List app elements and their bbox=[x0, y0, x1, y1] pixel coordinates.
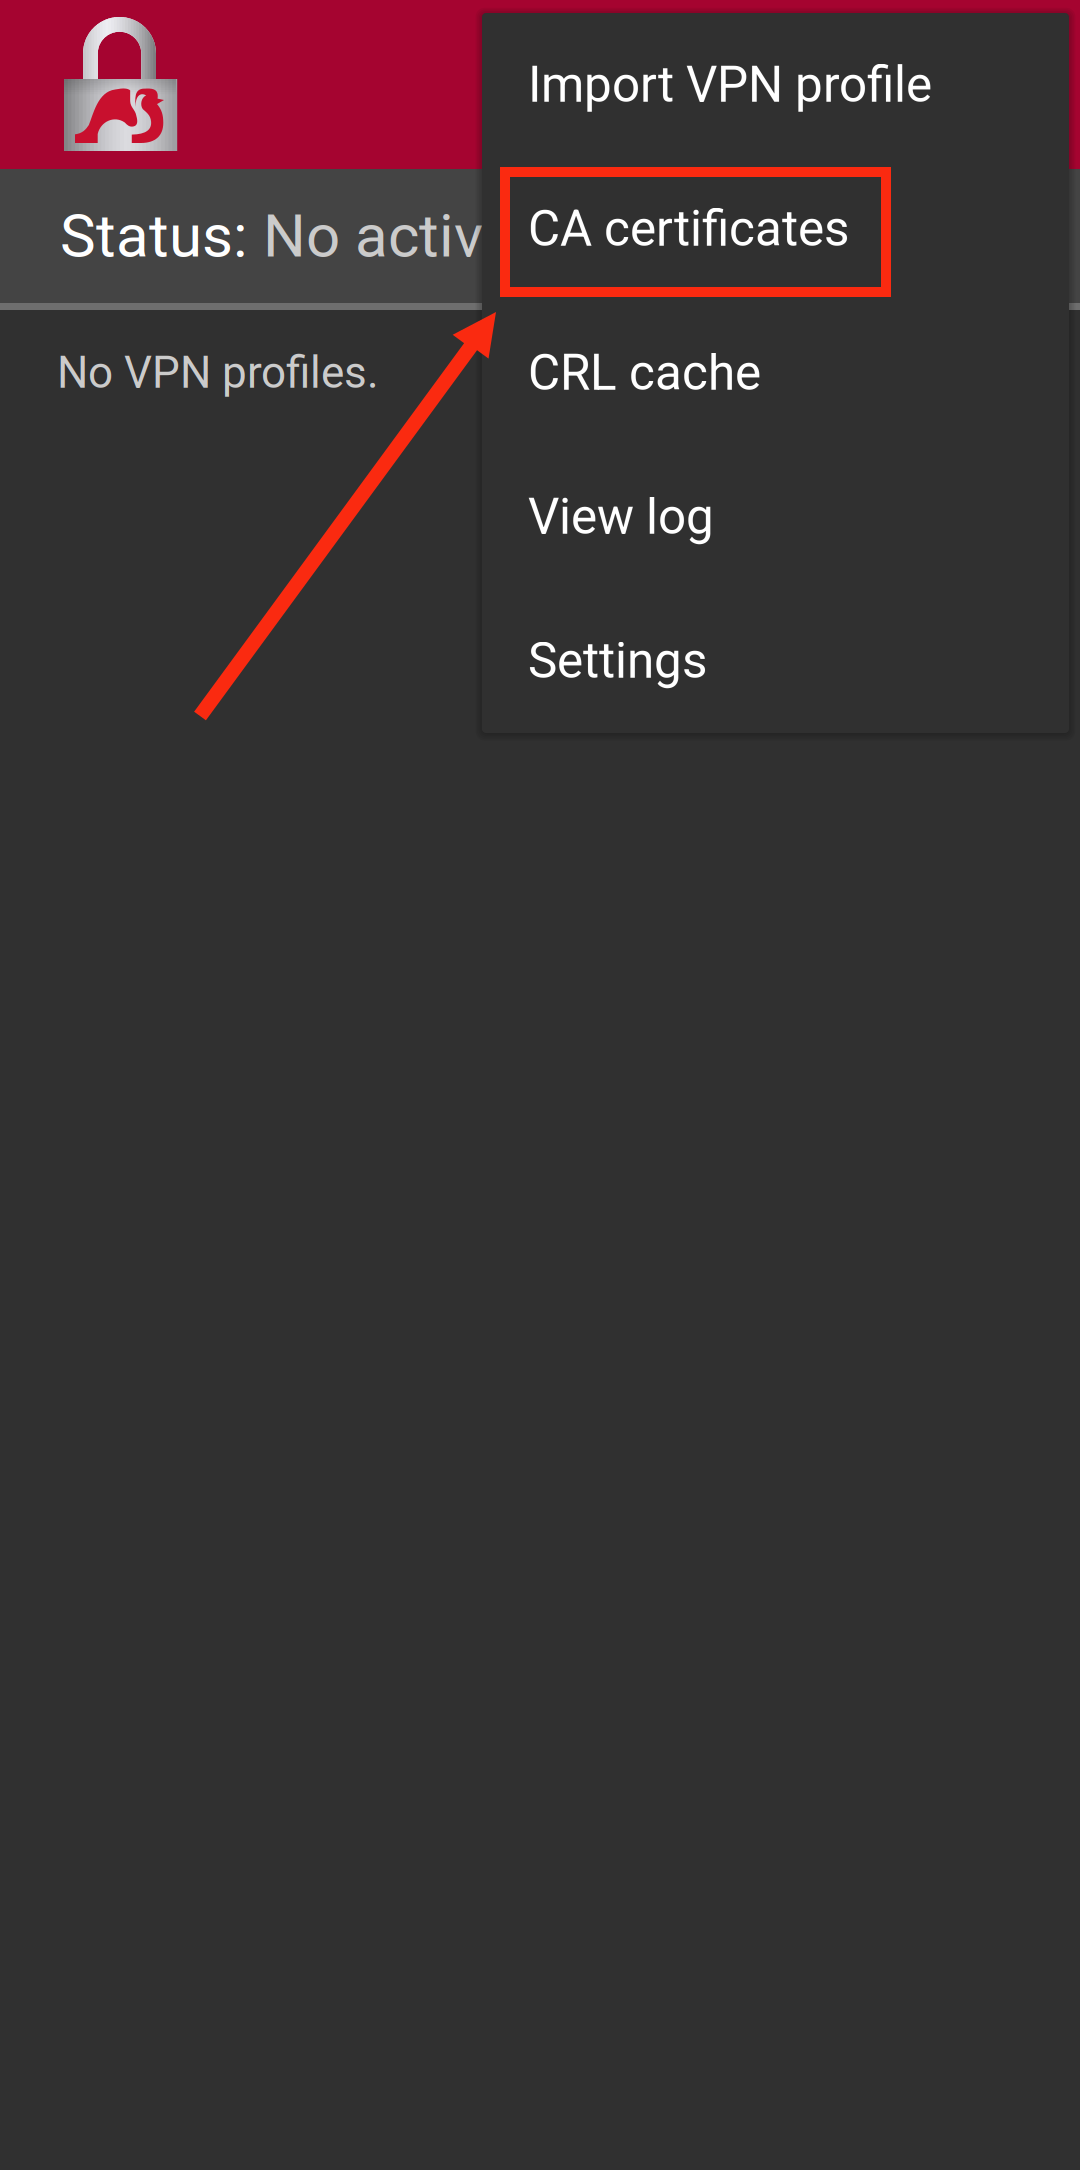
staticText: No VPN profiles. bbox=[57, 347, 379, 399]
staticText: CRL cache bbox=[528, 344, 761, 402]
button[interactable]: View log bbox=[482, 445, 1069, 589]
staticText: No active VPN bbox=[263, 201, 649, 271]
staticText: Import VPN profile bbox=[528, 56, 932, 114]
button[interactable]: Import VPN profile bbox=[482, 13, 1069, 157]
staticText: Settings bbox=[528, 632, 707, 690]
button[interactable]: Settings bbox=[482, 589, 1069, 733]
staticText: CA certificates bbox=[528, 200, 849, 258]
staticText: Status: bbox=[60, 201, 263, 271]
button[interactable]: CA certificates bbox=[482, 157, 1069, 301]
staticText: View log bbox=[528, 488, 714, 546]
button[interactable]: CRL cache bbox=[482, 301, 1069, 445]
